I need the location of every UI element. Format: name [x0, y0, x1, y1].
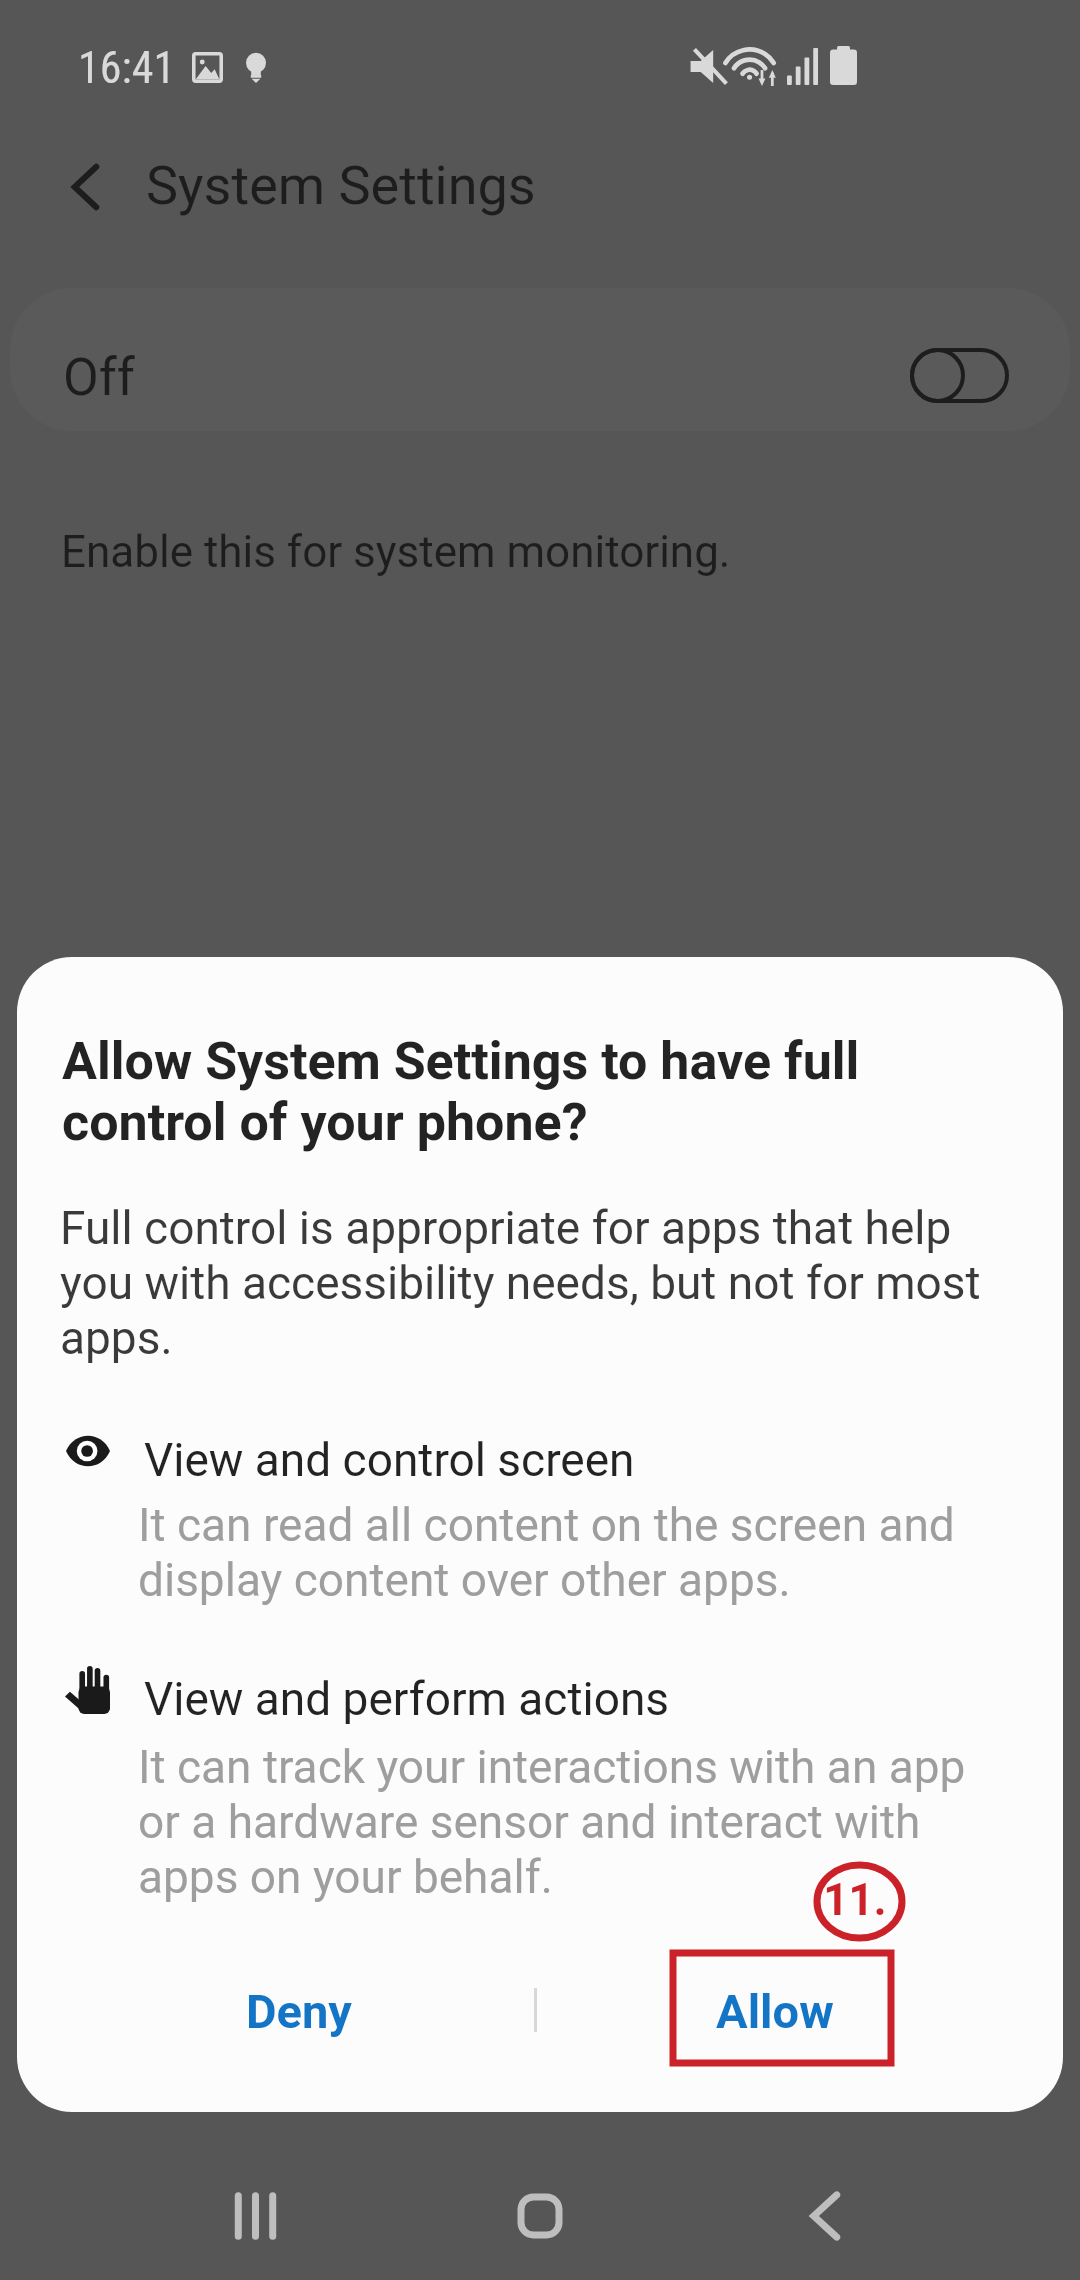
- button[interactable]: Home: [490, 2175, 590, 2257]
- button[interactable]: Deny: [169, 1956, 429, 2066]
- staticText: Allow: [716, 1984, 834, 2039]
- button[interactable]: Navigate up: [40, 142, 130, 232]
- button[interactable]: Back: [775, 2175, 875, 2257]
- button[interactable]: Recent apps: [205, 2175, 305, 2257]
- staticText: 11.: [823, 1874, 887, 1926]
- button[interactable]: Allow: [645, 1956, 905, 2066]
- staticText: 16:41: [78, 42, 176, 94]
- staticText: System Settings: [146, 154, 536, 217]
- staticText: Deny: [246, 1984, 352, 2039]
- staticText: View and control screen: [144, 1433, 635, 1487]
- staticText: View and perform actions: [144, 1672, 670, 1726]
- staticText: Enable this for system monitoring.: [61, 526, 731, 578]
- staticText: Allow System Settings to have full contr…: [62, 1031, 922, 1153]
- staticText: It can track your interactions with an a…: [138, 1740, 1018, 1904]
- button[interactable]: Off: [10, 288, 1070, 431]
- staticText: Full control is appropriate for apps tha…: [60, 1201, 1010, 1365]
- staticText: It can read all content on the screen an…: [138, 1498, 998, 1607]
- staticText: Off: [63, 347, 135, 408]
